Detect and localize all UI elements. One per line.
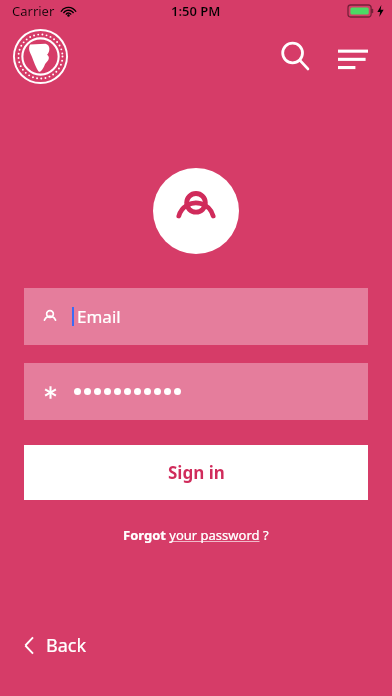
button[interactable]: Search (274, 35, 316, 77)
button[interactable]: Forgot your password ? (113, 522, 279, 548)
staticText: Carrier (12, 2, 55, 20)
button[interactable]: Logo (13, 29, 68, 84)
staticText: 1:50 PM (171, 2, 221, 20)
staticText: Forgot your password ? (123, 526, 269, 544)
button[interactable]: Sign in (24, 445, 368, 500)
button[interactable]: Menu (332, 35, 374, 77)
staticText: Back (46, 633, 87, 658)
button[interactable]: Email (24, 288, 368, 345)
button[interactable]: Profile avatar (153, 168, 239, 254)
button[interactable] (24, 363, 368, 420)
staticText: Email (77, 305, 121, 328)
staticText: Sign in (168, 461, 225, 484)
button[interactable]: Back (18, 625, 93, 666)
